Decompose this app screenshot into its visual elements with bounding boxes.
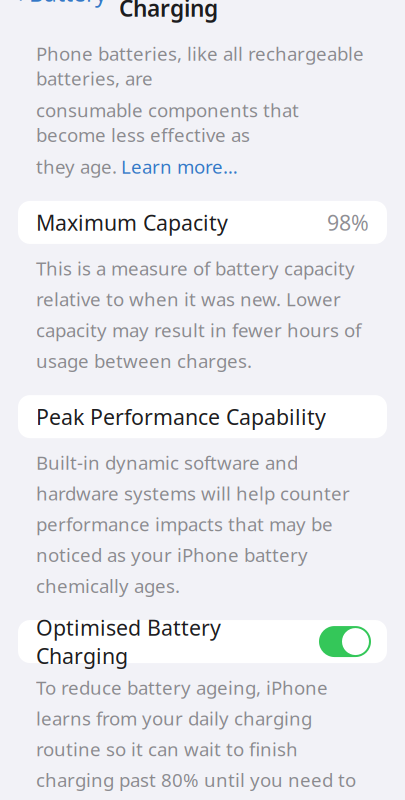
- staticText: consumable components that become less e…: [36, 98, 299, 147]
- button[interactable]: Battery: [0, 0, 113, 14]
- button[interactable]: Optimised Battery Charging: [18, 620, 387, 663]
- staticText: Optimised Battery Charging: [36, 613, 221, 670]
- button[interactable]: Learn more…: [121, 154, 238, 179]
- button[interactable]: Peak Performance Capability: [18, 395, 387, 438]
- staticText: Learn more…: [121, 154, 238, 179]
- button[interactable]: Maximum Capacity: [18, 201, 387, 244]
- staticText: they age.: [36, 154, 117, 179]
- staticText: Battery Health & Charging: [119, 0, 301, 23]
- staticText: To reduce battery ageing, iPhone learns …: [36, 675, 356, 800]
- staticText: Built-in dynamic software and hardware s…: [36, 450, 350, 598]
- staticText: 98%: [327, 208, 369, 237]
- staticText: Maximum Capacity: [36, 208, 228, 237]
- staticText: This is a measure of battery capacity re…: [36, 256, 361, 373]
- staticText: Peak Performance Capability: [36, 402, 326, 431]
- staticText: Battery: [29, 0, 107, 8]
- staticText: Phone batteries, like all rechargeable b…: [36, 41, 364, 91]
